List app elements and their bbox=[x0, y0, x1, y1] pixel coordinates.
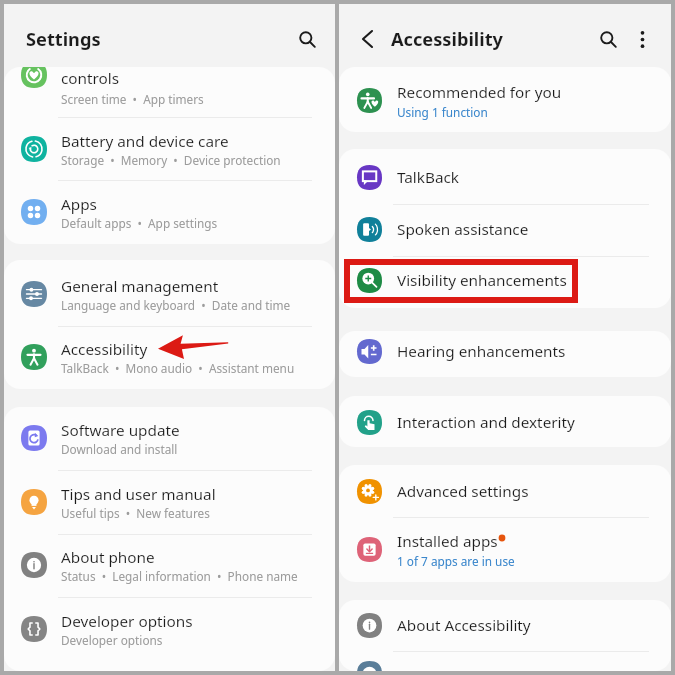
staticText: 1 of 7 apps are in use bbox=[397, 553, 515, 569]
staticText: Apps bbox=[61, 194, 97, 215]
staticText: Battery and device care bbox=[61, 131, 229, 152]
staticText: Installed apps bbox=[397, 531, 498, 552]
staticText: About phone bbox=[61, 547, 155, 568]
button[interactable] bbox=[339, 647, 671, 671]
staticText: Developer options bbox=[61, 611, 193, 632]
staticText: controls bbox=[61, 68, 120, 89]
staticText: Tips and user manual bbox=[61, 484, 216, 505]
staticText: TalkBack • Mono audio • Assistant menu bbox=[61, 360, 295, 376]
button[interactable]: General management bbox=[4, 262, 335, 325]
button[interactable]: Back bbox=[347, 19, 387, 59]
button[interactable]: Spoken assistance bbox=[339, 203, 671, 255]
staticText: Hearing enhancements bbox=[397, 341, 566, 362]
staticText: Useful tips • New features bbox=[61, 505, 210, 521]
staticText: Using 1 function bbox=[397, 104, 488, 120]
button[interactable]: Installed apps bbox=[339, 523, 671, 575]
button[interactable]: Tips and user manual bbox=[4, 470, 335, 533]
staticText: General management bbox=[61, 276, 219, 297]
staticText: Accessibility bbox=[61, 339, 148, 360]
button[interactable]: About phone bbox=[4, 533, 335, 596]
button[interactable]: Developer options bbox=[4, 597, 335, 660]
button[interactable]: Advanced settings bbox=[339, 465, 671, 517]
button[interactable]: TalkBack bbox=[339, 151, 671, 203]
staticText: Accessibility bbox=[391, 27, 503, 52]
staticText: Advanced settings bbox=[397, 481, 529, 502]
button[interactable]: Visibility enhancements bbox=[339, 254, 671, 306]
staticText: Settings bbox=[26, 27, 101, 52]
button[interactable]: Accessibility bbox=[4, 325, 335, 388]
staticText: About Accessibility bbox=[397, 615, 531, 636]
button[interactable]: Recommended for you bbox=[339, 74, 671, 126]
staticText: Recommended for you bbox=[397, 82, 562, 103]
staticText: Software update bbox=[61, 420, 180, 441]
button[interactable]: Search bbox=[587, 18, 629, 60]
staticText: Interaction and dexterity bbox=[397, 412, 575, 433]
button[interactable]: About Accessibility bbox=[339, 600, 671, 651]
button[interactable]: Interaction and dexterity bbox=[339, 396, 671, 447]
staticText: Visibility enhancements bbox=[397, 270, 567, 291]
staticText: Developer options bbox=[61, 632, 163, 648]
button[interactable]: More options bbox=[621, 18, 663, 60]
staticText: Default apps • App settings bbox=[61, 215, 218, 231]
staticText: Spoken assistance bbox=[397, 219, 529, 240]
staticText: Language and keyboard • Date and time bbox=[61, 297, 291, 313]
staticText: Storage • Memory • Device protection bbox=[61, 152, 281, 168]
button[interactable]: Battery and device care bbox=[4, 117, 335, 180]
button[interactable]: Software update bbox=[4, 407, 335, 469]
button[interactable]: Search bbox=[286, 18, 328, 60]
staticText: Download and install bbox=[61, 441, 178, 457]
staticText: Status • Legal information • Phone name bbox=[61, 568, 298, 584]
staticText: Screen time • App timers bbox=[61, 91, 204, 107]
staticText: TalkBack bbox=[397, 167, 460, 188]
button[interactable]: Hearing enhancements bbox=[339, 331, 671, 371]
button[interactable]: Apps bbox=[4, 180, 335, 243]
